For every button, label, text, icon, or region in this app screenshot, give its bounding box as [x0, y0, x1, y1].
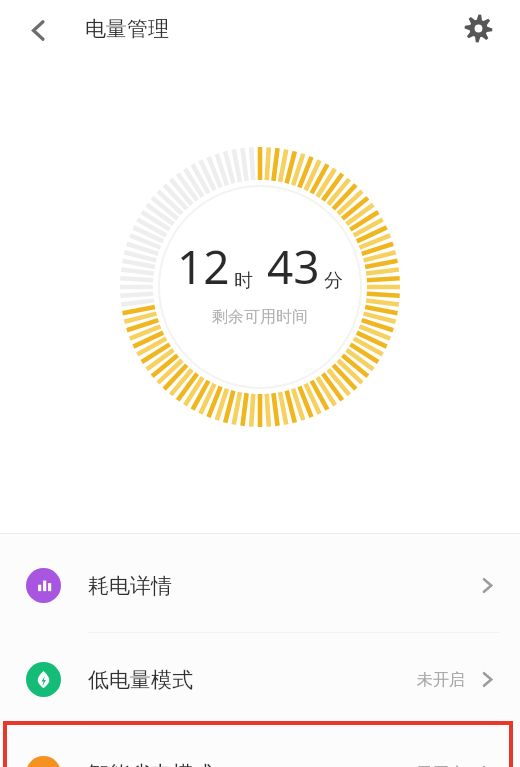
staticText: 耗电详情	[88, 573, 172, 599]
staticText: 分	[324, 269, 343, 293]
button[interactable]: Back	[12, 4, 64, 56]
button[interactable]: 低电量模式	[0, 633, 520, 726]
staticText: 时	[234, 269, 253, 293]
staticText: 剩余可用时间	[212, 307, 308, 327]
staticText: 未开启	[417, 670, 465, 690]
staticText: 12	[177, 235, 230, 298]
staticText: 电量管理	[85, 16, 169, 42]
staticText: 低电量模式	[88, 667, 193, 693]
button[interactable]: 耗电详情	[0, 539, 520, 632]
staticText: 智能省电模式	[88, 761, 214, 767]
staticText: 已开启	[417, 764, 465, 767]
button[interactable]: Settings	[454, 4, 502, 52]
staticText: 43	[267, 235, 320, 298]
button[interactable]: 智能省电模式	[0, 727, 520, 767]
